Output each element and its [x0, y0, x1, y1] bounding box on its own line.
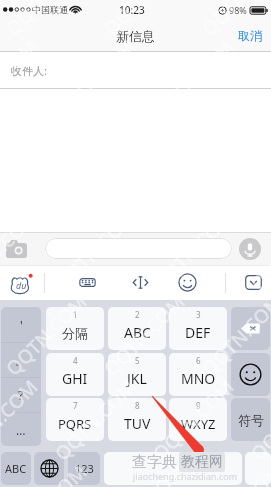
staticText: 123	[75, 461, 94, 476]
button[interactable]	[104, 452, 242, 485]
button[interactable]: 5	[108, 353, 166, 396]
button[interactable]: 。	[1, 343, 41, 377]
button[interactable]: Move cursor	[122, 269, 158, 296]
staticText: 98%	[229, 4, 247, 16]
staticText: 取消	[238, 28, 262, 43]
button[interactable]: '	[1, 307, 41, 342]
button[interactable]: Keyboard	[72, 269, 103, 296]
button[interactable]: 1	[46, 307, 104, 350]
button[interactable]: 6	[169, 353, 227, 396]
button[interactable]: …	[1, 413, 41, 446]
staticText: 新信息	[116, 28, 155, 44]
button[interactable]	[245, 452, 271, 485]
staticText: ABC	[5, 461, 27, 476]
staticText: 。	[15, 353, 27, 368]
staticText: DEF	[185, 323, 211, 342]
staticText: 中国联通	[32, 4, 68, 15]
button[interactable]: ?	[1, 378, 41, 412]
staticText: WXYZ	[181, 415, 216, 433]
button[interactable]: ABC	[1, 452, 31, 485]
button[interactable]: 123	[68, 452, 100, 485]
staticText: GHI	[62, 369, 88, 388]
button[interactable]: 符号	[231, 398, 270, 441]
staticText: 6	[196, 355, 201, 366]
staticText: 分隔	[62, 325, 88, 341]
button[interactable]: 4	[46, 353, 104, 396]
staticText: JKL	[127, 369, 147, 388]
staticText: 收件人:	[11, 63, 47, 78]
staticText: du	[16, 279, 27, 291]
staticText: 2	[135, 309, 140, 320]
staticText: ?	[18, 387, 24, 403]
staticText: 10:23	[119, 3, 145, 17]
button[interactable]: Emoji	[231, 353, 270, 396]
staticText: 4	[73, 355, 78, 366]
button[interactable]: Emoji	[170, 269, 204, 296]
button[interactable]: 7	[46, 398, 104, 441]
staticText: '	[20, 317, 23, 333]
staticText: 8	[135, 400, 140, 411]
staticText: …	[16, 422, 26, 438]
staticText: TUV	[124, 414, 151, 433]
button[interactable]: 3	[169, 307, 227, 350]
button[interactable]: Input method	[8, 269, 35, 296]
button[interactable]: 取消	[229, 21, 271, 50]
staticText: ABC	[124, 323, 151, 342]
staticText: 1	[73, 309, 78, 320]
button[interactable]: 收件人:	[0, 52, 271, 89]
button[interactable]	[45, 238, 232, 259]
button[interactable]: Camera	[3, 238, 29, 260]
button[interactable]: Switch keyboard	[34, 452, 64, 485]
staticText: 9	[196, 400, 201, 411]
staticText: 5	[135, 355, 140, 366]
staticText: PQRS	[58, 415, 92, 433]
button[interactable]: Voice input	[238, 237, 261, 260]
button[interactable]: 8	[108, 398, 166, 441]
staticText: jiaocheng.chazidian.com	[133, 470, 238, 482]
staticText: 符号	[238, 412, 264, 428]
staticText: 教程网	[181, 453, 223, 471]
button[interactable]: Hide keyboard	[236, 269, 270, 296]
button[interactable]: Backspace	[231, 307, 270, 350]
staticText: 7	[73, 400, 78, 411]
staticText: 3	[196, 309, 201, 320]
staticText: MNO	[181, 369, 216, 388]
button[interactable]: 2	[108, 307, 166, 350]
button[interactable]: 9	[169, 398, 227, 441]
staticText: 查字典	[132, 453, 177, 472]
